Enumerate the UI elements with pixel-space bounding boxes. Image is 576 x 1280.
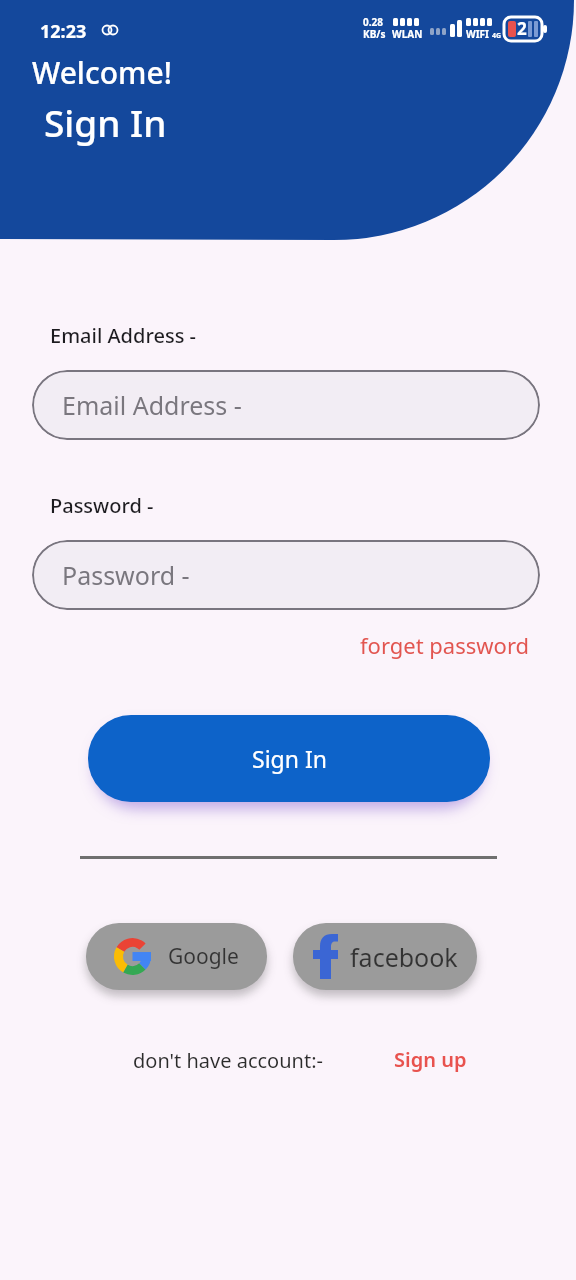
- button[interactable]: Sign up: [394, 1046, 467, 1073]
- staticText: Welcome!: [32, 52, 172, 93]
- staticText: WLAN: [392, 27, 423, 41]
- staticText: KB/s: [363, 27, 386, 41]
- staticText: Password -: [62, 558, 190, 592]
- button[interactable]: forget password: [360, 630, 530, 660]
- staticText: Password -: [50, 492, 154, 519]
- staticText: WIFI: [466, 27, 489, 41]
- staticText: 2: [517, 17, 527, 40]
- staticText: Email Address -: [50, 322, 197, 349]
- staticText: Sign In: [252, 743, 327, 774]
- button[interactable]: Google: [86, 923, 267, 990]
- button[interactable]: facebook: [293, 923, 477, 990]
- staticText: forget password: [360, 630, 530, 660]
- staticText: facebook: [350, 940, 458, 974]
- staticText: Email Address -: [62, 388, 242, 422]
- staticText: don't have account:-: [133, 1047, 323, 1074]
- button[interactable]: Password -: [32, 540, 540, 610]
- button[interactable]: Email Address -: [32, 370, 540, 440]
- staticText: Google: [168, 942, 239, 971]
- button[interactable]: Sign In: [88, 715, 490, 802]
- staticText: Sign In: [44, 97, 167, 147]
- staticText: 12:23: [40, 19, 87, 44]
- staticText: 4G: [492, 31, 502, 41]
- staticText: 0.28: [363, 15, 383, 29]
- staticText: Sign up: [394, 1046, 467, 1073]
